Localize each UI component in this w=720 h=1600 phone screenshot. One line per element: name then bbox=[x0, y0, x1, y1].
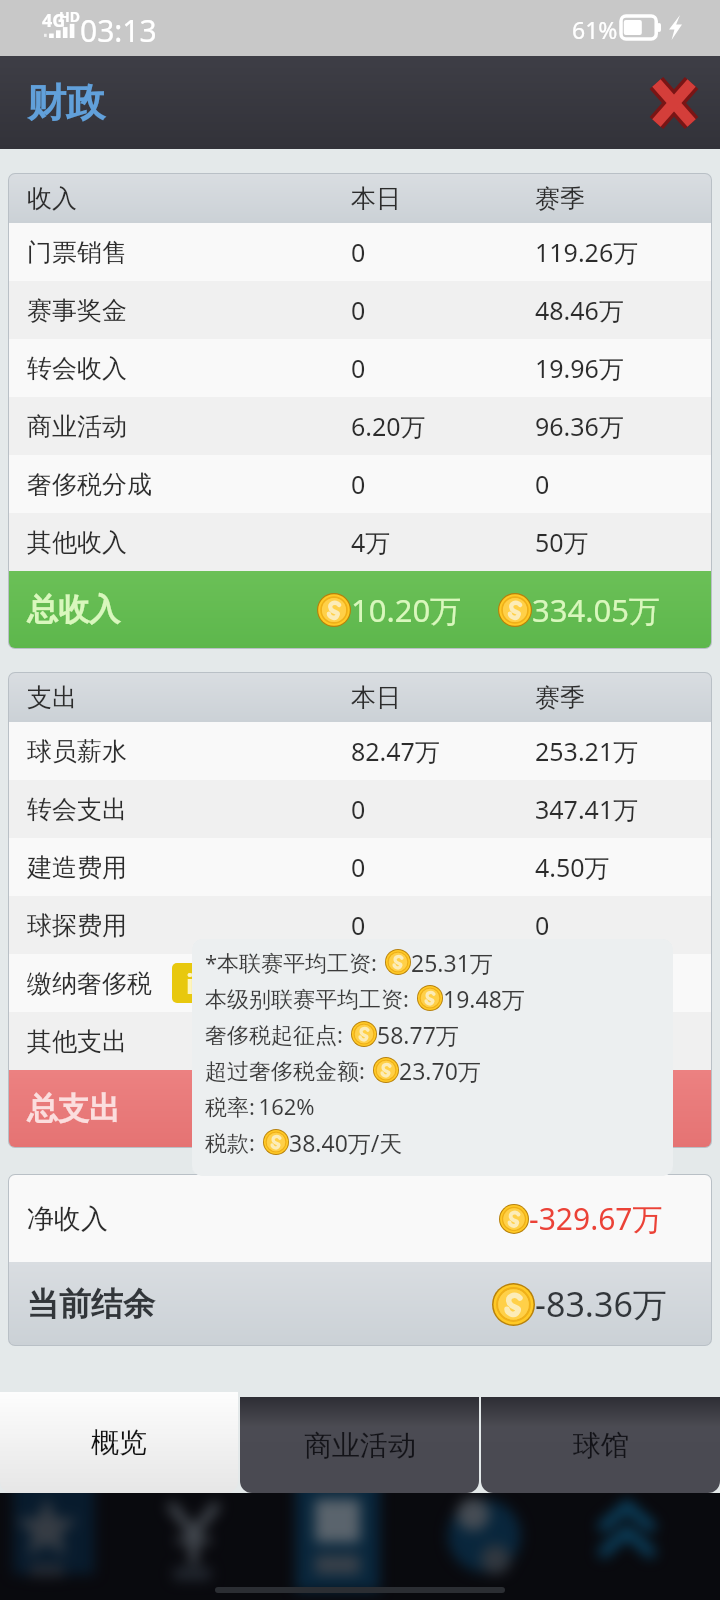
staticText: 6.20万 bbox=[351, 409, 426, 443]
staticText: 净收入 bbox=[27, 1202, 108, 1236]
staticText: 支出 bbox=[27, 682, 77, 713]
staticText: 0 bbox=[351, 850, 366, 884]
staticText: -83.36万 bbox=[535, 1281, 667, 1327]
staticText: 财政 bbox=[27, 78, 105, 127]
button[interactable]: 商业活动 bbox=[240, 1397, 479, 1493]
staticText: 19.96万 bbox=[535, 351, 624, 385]
staticText: 82.47万 bbox=[351, 734, 440, 768]
button[interactable]: 当前结余 bbox=[9, 1262, 711, 1345]
staticText: 10.20万 bbox=[351, 589, 462, 631]
staticText: 赛季 bbox=[535, 183, 585, 214]
staticText: 4G bbox=[42, 8, 66, 33]
staticText: 0 bbox=[535, 467, 550, 501]
button[interactable]: 缴纳奢侈税 bbox=[9, 954, 711, 1012]
staticText: 19.48万 bbox=[443, 983, 525, 1014]
staticText: 转会收入 bbox=[27, 353, 127, 384]
staticText: 球馆 bbox=[573, 1428, 629, 1463]
button[interactable]: 其他收入 bbox=[9, 513, 711, 571]
button[interactable]: 总收入 bbox=[9, 571, 711, 648]
staticText: 4万 bbox=[351, 525, 391, 559]
staticText: 0 bbox=[535, 908, 550, 942]
staticText: 赛事奖金 bbox=[27, 295, 127, 326]
button[interactable]: 球员薪水 bbox=[9, 722, 711, 780]
staticText: 总支出 bbox=[27, 1089, 120, 1128]
staticText: 03:13 bbox=[80, 10, 157, 51]
staticText: *本联赛平均工资: bbox=[205, 947, 385, 977]
staticText: 本日 bbox=[351, 682, 401, 713]
button[interactable]: 球探费用 bbox=[9, 896, 711, 954]
staticText: 38.40万/天 bbox=[289, 1127, 403, 1158]
staticText: 总收入 bbox=[27, 590, 120, 629]
button[interactable]: 转会收入 bbox=[9, 339, 711, 397]
staticText: 收入 bbox=[27, 183, 77, 214]
staticText: 概览 bbox=[91, 1425, 147, 1460]
button[interactable]: 建造费用 bbox=[9, 838, 711, 896]
staticText: 税率: 162% bbox=[205, 1091, 315, 1121]
button[interactable]: 门票销售 bbox=[9, 223, 711, 281]
staticText: 0 bbox=[351, 792, 366, 826]
staticText: 商业活动 bbox=[27, 411, 127, 442]
staticText: 48.46万 bbox=[535, 293, 624, 327]
staticText: 其他收入 bbox=[27, 527, 127, 558]
staticText: 建造费用 bbox=[27, 852, 127, 883]
staticText: 其他支出 bbox=[27, 1026, 127, 1057]
staticText: 超过奢侈税金额: bbox=[205, 1055, 373, 1085]
staticText: 334.05万 bbox=[532, 589, 660, 631]
button[interactable]: 奢侈税分成 bbox=[9, 455, 711, 513]
button[interactable]: 赛事奖金 bbox=[9, 281, 711, 339]
staticText: 58.77万 bbox=[377, 1019, 459, 1050]
staticText: HD bbox=[59, 7, 80, 26]
staticText: 23.70万 bbox=[399, 1055, 481, 1086]
button[interactable]: 净收入 bbox=[9, 1175, 711, 1262]
button[interactable]: Close bbox=[640, 69, 708, 137]
staticText: 奢侈税起征点: bbox=[205, 1019, 351, 1049]
button[interactable]: 转会支出 bbox=[9, 780, 711, 838]
staticText: 0 bbox=[351, 293, 366, 327]
button[interactable]: 商业活动 bbox=[9, 397, 711, 455]
staticText: 商业活动 bbox=[304, 1428, 416, 1463]
staticText: 税款: bbox=[205, 1127, 263, 1157]
staticText: 119.26万 bbox=[535, 235, 639, 269]
staticText: 本级别联赛平均工资: bbox=[205, 983, 417, 1013]
staticText: 4.50万 bbox=[535, 850, 610, 884]
staticText: 球探费用 bbox=[27, 910, 127, 941]
staticText: 50万 bbox=[535, 525, 589, 559]
staticText: 门票销售 bbox=[27, 237, 127, 268]
staticText: 球员薪水 bbox=[27, 736, 127, 767]
button[interactable]: 球馆 bbox=[481, 1397, 720, 1493]
button[interactable]: Tax info bbox=[172, 963, 208, 1003]
staticText: 0 bbox=[351, 351, 366, 385]
button[interactable]: 其他支出 bbox=[9, 1012, 711, 1070]
button[interactable]: 总支出 bbox=[9, 1070, 711, 1147]
staticText: 缴纳奢侈税 bbox=[27, 968, 152, 999]
button[interactable]: 概览 bbox=[0, 1392, 238, 1493]
staticText: 转会支出 bbox=[27, 794, 127, 825]
staticText: 本日 bbox=[351, 183, 401, 214]
staticText: 0 bbox=[351, 467, 366, 501]
staticText: -329.67万 bbox=[529, 1198, 663, 1239]
staticText: 347.41万 bbox=[535, 792, 639, 826]
staticText: i bbox=[186, 966, 194, 1001]
staticText: 当前结余 bbox=[27, 1284, 155, 1324]
staticText: 25.31万 bbox=[411, 947, 493, 978]
staticText: 0 bbox=[351, 908, 366, 942]
staticText: 0 bbox=[351, 235, 366, 269]
staticText: 253.21万 bbox=[535, 734, 639, 768]
staticText: 96.36万 bbox=[535, 409, 624, 443]
staticText: 61% bbox=[572, 14, 618, 45]
staticText: 奢侈税分成 bbox=[27, 469, 152, 500]
staticText: 赛季 bbox=[535, 682, 585, 713]
